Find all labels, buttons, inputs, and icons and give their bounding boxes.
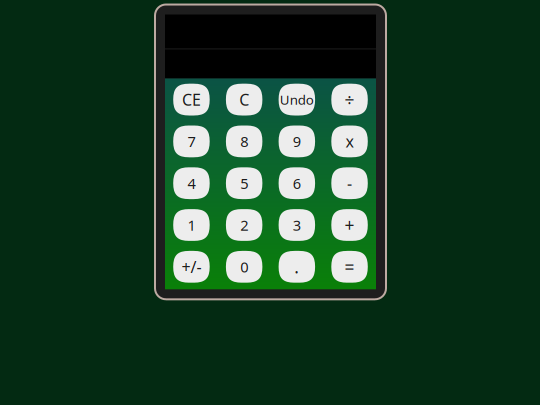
staticText: CE <box>182 89 201 110</box>
button[interactable]: . <box>279 251 315 283</box>
button[interactable]: 9 <box>279 125 315 157</box>
button[interactable]: 1 <box>173 209 210 241</box>
staticText: 8 <box>240 132 248 151</box>
button[interactable]: x <box>331 125 368 157</box>
staticText: . <box>294 255 299 278</box>
button[interactable]: Undo <box>279 84 315 115</box>
staticText: 2 <box>240 215 248 235</box>
staticText: 0 <box>240 257 248 277</box>
staticText: 1 <box>187 215 195 235</box>
staticText: 5 <box>240 173 248 193</box>
button[interactable]: CE <box>173 84 210 115</box>
button[interactable]: ÷ <box>331 84 368 115</box>
button[interactable]: 2 <box>226 209 262 241</box>
button[interactable]: 0 <box>226 251 262 283</box>
button[interactable]: 7 <box>173 125 210 157</box>
button[interactable]: 8 <box>226 125 262 157</box>
staticText: Undo <box>280 91 314 108</box>
button[interactable]: C <box>226 84 262 115</box>
staticText: 6 <box>293 173 301 193</box>
staticText: 9 <box>293 132 301 151</box>
button[interactable]: - <box>331 167 368 199</box>
staticText: = <box>345 255 355 278</box>
staticText: ÷ <box>345 88 355 111</box>
button[interactable]: +/- <box>173 251 210 283</box>
staticText: +/- <box>181 256 201 277</box>
button[interactable]: 6 <box>279 167 315 199</box>
button[interactable]: 4 <box>173 167 210 199</box>
staticText: 3 <box>293 215 301 235</box>
staticText: x <box>346 131 354 152</box>
staticText: + <box>345 213 355 236</box>
button[interactable]: 3 <box>279 209 315 241</box>
button[interactable]: = <box>331 251 368 283</box>
staticText: C <box>239 89 249 110</box>
button[interactable]: + <box>331 209 368 241</box>
staticText: 7 <box>187 132 195 151</box>
button[interactable]: 5 <box>226 167 262 199</box>
staticText: - <box>347 173 352 194</box>
staticText: 4 <box>187 173 195 193</box>
